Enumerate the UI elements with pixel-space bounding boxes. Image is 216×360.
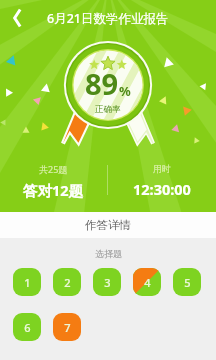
button[interactable]: 5 [173, 268, 201, 296]
staticText: % [119, 82, 131, 100]
button[interactable]: 3 [93, 268, 121, 296]
staticText: 2 [64, 275, 71, 290]
staticText: 正确率 [95, 104, 121, 115]
staticText: 6月21日数学作业报告 [47, 10, 169, 27]
staticText: 4 [144, 275, 151, 290]
staticText: 3 [104, 275, 111, 290]
staticText: 选择题 [95, 248, 122, 259]
staticText: 12:30:00 [133, 179, 191, 199]
staticText: 7 [64, 320, 71, 335]
button[interactable]: 1 [13, 268, 41, 296]
button[interactable]: 7 [53, 313, 81, 341]
staticText: 作答详情 [85, 218, 131, 232]
staticText: 89 [85, 64, 119, 103]
staticText: 用时 [153, 163, 171, 174]
staticText: 共25题 [39, 163, 68, 175]
button[interactable]: Back [0, 0, 36, 36]
staticText: 答对12题 [23, 180, 84, 200]
button[interactable]: 4 [133, 268, 161, 296]
staticText: 1 [24, 275, 31, 290]
button[interactable]: 2 [53, 268, 81, 296]
button[interactable]: 6 [13, 313, 41, 341]
staticText: 5 [184, 275, 191, 290]
staticText: 6 [24, 320, 31, 335]
